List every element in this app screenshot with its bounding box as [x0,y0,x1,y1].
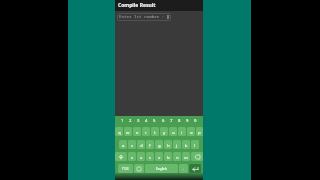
staticText: j [176,142,178,148]
button[interactable]: . [179,164,188,173]
staticText: x [140,154,143,160]
staticText: t [154,129,156,135]
button[interactable]: h [164,140,172,149]
button[interactable]: v [155,152,163,161]
staticText: z [131,154,134,160]
staticText: s [131,142,134,148]
staticText: y [163,129,166,135]
button[interactable]: 2 [129,118,132,124]
staticText: d [140,142,143,148]
button[interactable]: c [146,152,154,161]
staticText: c [149,154,152,160]
staticText: o [190,129,193,135]
button[interactable]: 8 [178,118,181,124]
button[interactable]: r [142,127,150,136]
button[interactable]: u [169,127,177,136]
staticText: h [167,142,170,148]
button[interactable]: a [119,140,127,149]
button[interactable]: g [155,140,163,149]
button[interactable]: ?123 [118,164,133,173]
button[interactable]: q [115,127,123,136]
button[interactable] [134,164,144,173]
staticText: Enter 1st number : [119,14,165,20]
button[interactable]: y [160,127,168,136]
staticText: r [145,129,147,135]
staticText: . [183,166,185,171]
button[interactable]: l [191,140,199,149]
staticText: l [194,142,196,148]
button[interactable]: d [137,140,145,149]
staticText: g [158,142,161,148]
staticText: m [184,154,189,160]
button[interactable] [115,152,127,161]
button[interactable] [189,164,201,173]
staticText: w [126,129,130,135]
button[interactable]: x [137,152,145,161]
staticText: p [198,129,201,135]
button[interactable]: p [196,127,203,136]
button[interactable]: k [182,140,190,149]
staticText: b [167,154,170,160]
button[interactable]: Compile Result [115,0,203,11]
button[interactable]: 3 [137,118,140,124]
button[interactable]: English [145,164,178,173]
button[interactable]: Enter 1st number : [119,14,169,20]
staticText: q [118,129,121,135]
staticText: i [181,129,183,135]
staticText: e [136,129,139,135]
button[interactable]: n [173,152,181,161]
button[interactable]: j [173,140,181,149]
button[interactable]: s [128,140,136,149]
button[interactable]: b [164,152,172,161]
button[interactable] [191,152,203,161]
staticText: English [156,167,167,171]
button[interactable]: 7 [170,118,173,124]
button[interactable]: i [178,127,186,136]
button[interactable]: 4 [145,118,148,124]
staticText: Compile Result [118,2,156,9]
button[interactable]: m [182,152,190,161]
staticText: n [176,154,179,160]
button[interactable]: f [146,140,154,149]
button[interactable]: 9 [186,118,189,124]
staticText: a [122,142,125,148]
staticText: u [172,129,175,135]
staticText: ?123 [122,167,129,171]
button[interactable]: 0 [194,118,197,124]
button[interactable]: o [187,127,195,136]
button[interactable]: e [133,127,141,136]
button[interactable]: t [151,127,159,136]
button[interactable]: 6 [162,118,165,124]
staticText: f [149,142,151,148]
staticText: k [185,142,188,148]
button[interactable]: 5 [153,118,156,124]
staticText: v [158,154,161,160]
button[interactable]: 1 [121,118,124,124]
button[interactable]: z [128,152,136,161]
button[interactable]: w [124,127,132,136]
